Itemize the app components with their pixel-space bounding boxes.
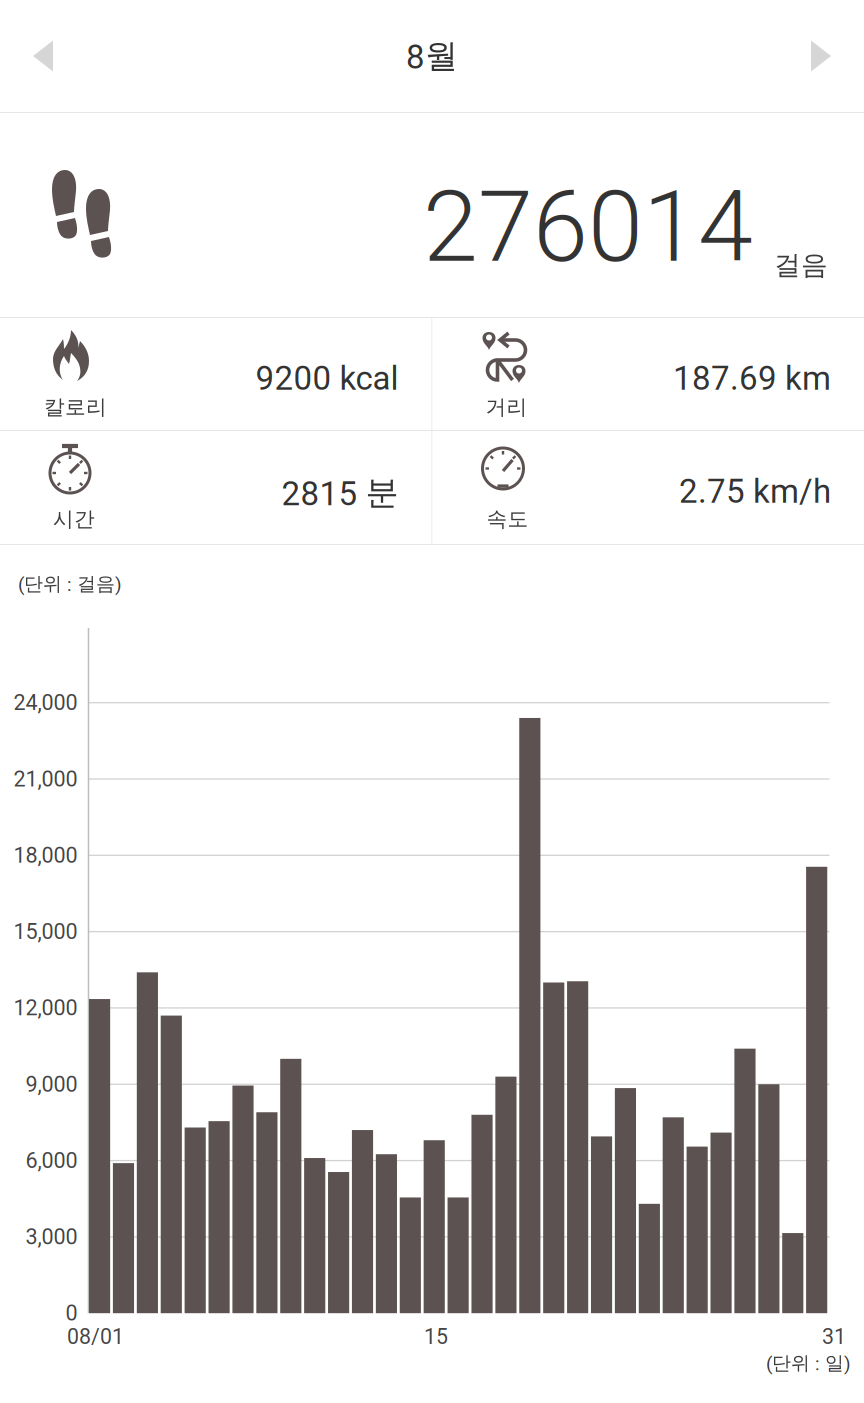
staticText: 9,000 xyxy=(25,1072,77,1097)
staticText: 2815 분 xyxy=(281,472,398,514)
button[interactable]: 속도 xyxy=(432,431,864,544)
staticText: 거리 xyxy=(485,394,527,420)
staticText: 6,000 xyxy=(25,1148,77,1173)
staticText: 21,000 xyxy=(13,766,77,792)
staticText: 0 xyxy=(65,1300,77,1326)
staticText: 12,000 xyxy=(13,995,77,1021)
staticText: 31 xyxy=(822,1324,846,1349)
staticText: (단위 : 일) xyxy=(766,1351,851,1375)
staticText: 2.75 km/h xyxy=(679,472,831,511)
staticText: 걸음 xyxy=(774,248,828,282)
button[interactable]: Previous month xyxy=(0,14,86,97)
staticText: 9200 kcal xyxy=(255,359,398,398)
button[interactable]: 거리 xyxy=(432,318,864,430)
staticText: 속도 xyxy=(486,506,528,532)
staticText: 8월 xyxy=(406,35,458,77)
staticText: 칼로리 xyxy=(44,394,107,420)
staticText: 3,000 xyxy=(25,1224,77,1249)
button[interactable]: 칼로리 xyxy=(0,318,431,430)
staticText: 18,000 xyxy=(13,843,77,868)
staticText: 24,000 xyxy=(13,690,77,715)
staticText: 276014 xyxy=(423,169,753,285)
button[interactable]: 시간 xyxy=(0,431,431,544)
staticText: 08/01 xyxy=(67,1324,124,1349)
staticText: (단위 : 걸음) xyxy=(18,572,122,596)
staticText: 시간 xyxy=(53,506,95,532)
staticText: 187.69 km xyxy=(673,359,831,398)
button[interactable]: Next month xyxy=(778,14,864,97)
staticText: 15,000 xyxy=(13,919,77,944)
staticText: 15 xyxy=(424,1324,448,1349)
